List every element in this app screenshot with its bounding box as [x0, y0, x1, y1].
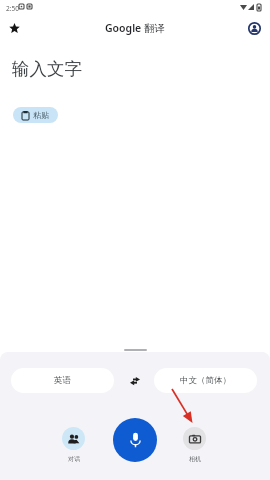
staticText: 相机 — [189, 455, 201, 463]
staticText: 翻译 — [144, 22, 165, 35]
button[interactable]: Camera — [183, 427, 206, 463]
staticText: Google — [105, 21, 144, 35]
staticText: 2:50 — [6, 4, 19, 13]
button[interactable]: Swap languages — [124, 368, 146, 393]
button[interactable]: 英语 — [11, 368, 114, 393]
button[interactable]: 粘贴 — [13, 107, 58, 123]
button[interactable]: 中文（简体） — [154, 368, 257, 393]
staticText: 输入文字 — [12, 58, 82, 80]
staticText: 对话 — [68, 455, 80, 463]
staticText: 中文（简体） — [180, 375, 231, 386]
button[interactable]: Conversation — [62, 427, 85, 463]
staticText: 粘贴 — [33, 110, 49, 120]
button[interactable]: Voice input — [113, 418, 157, 462]
staticText: 英语 — [54, 375, 71, 386]
button[interactable]: Saved translations — [2, 16, 26, 40]
button[interactable]: Account — [242, 16, 267, 41]
